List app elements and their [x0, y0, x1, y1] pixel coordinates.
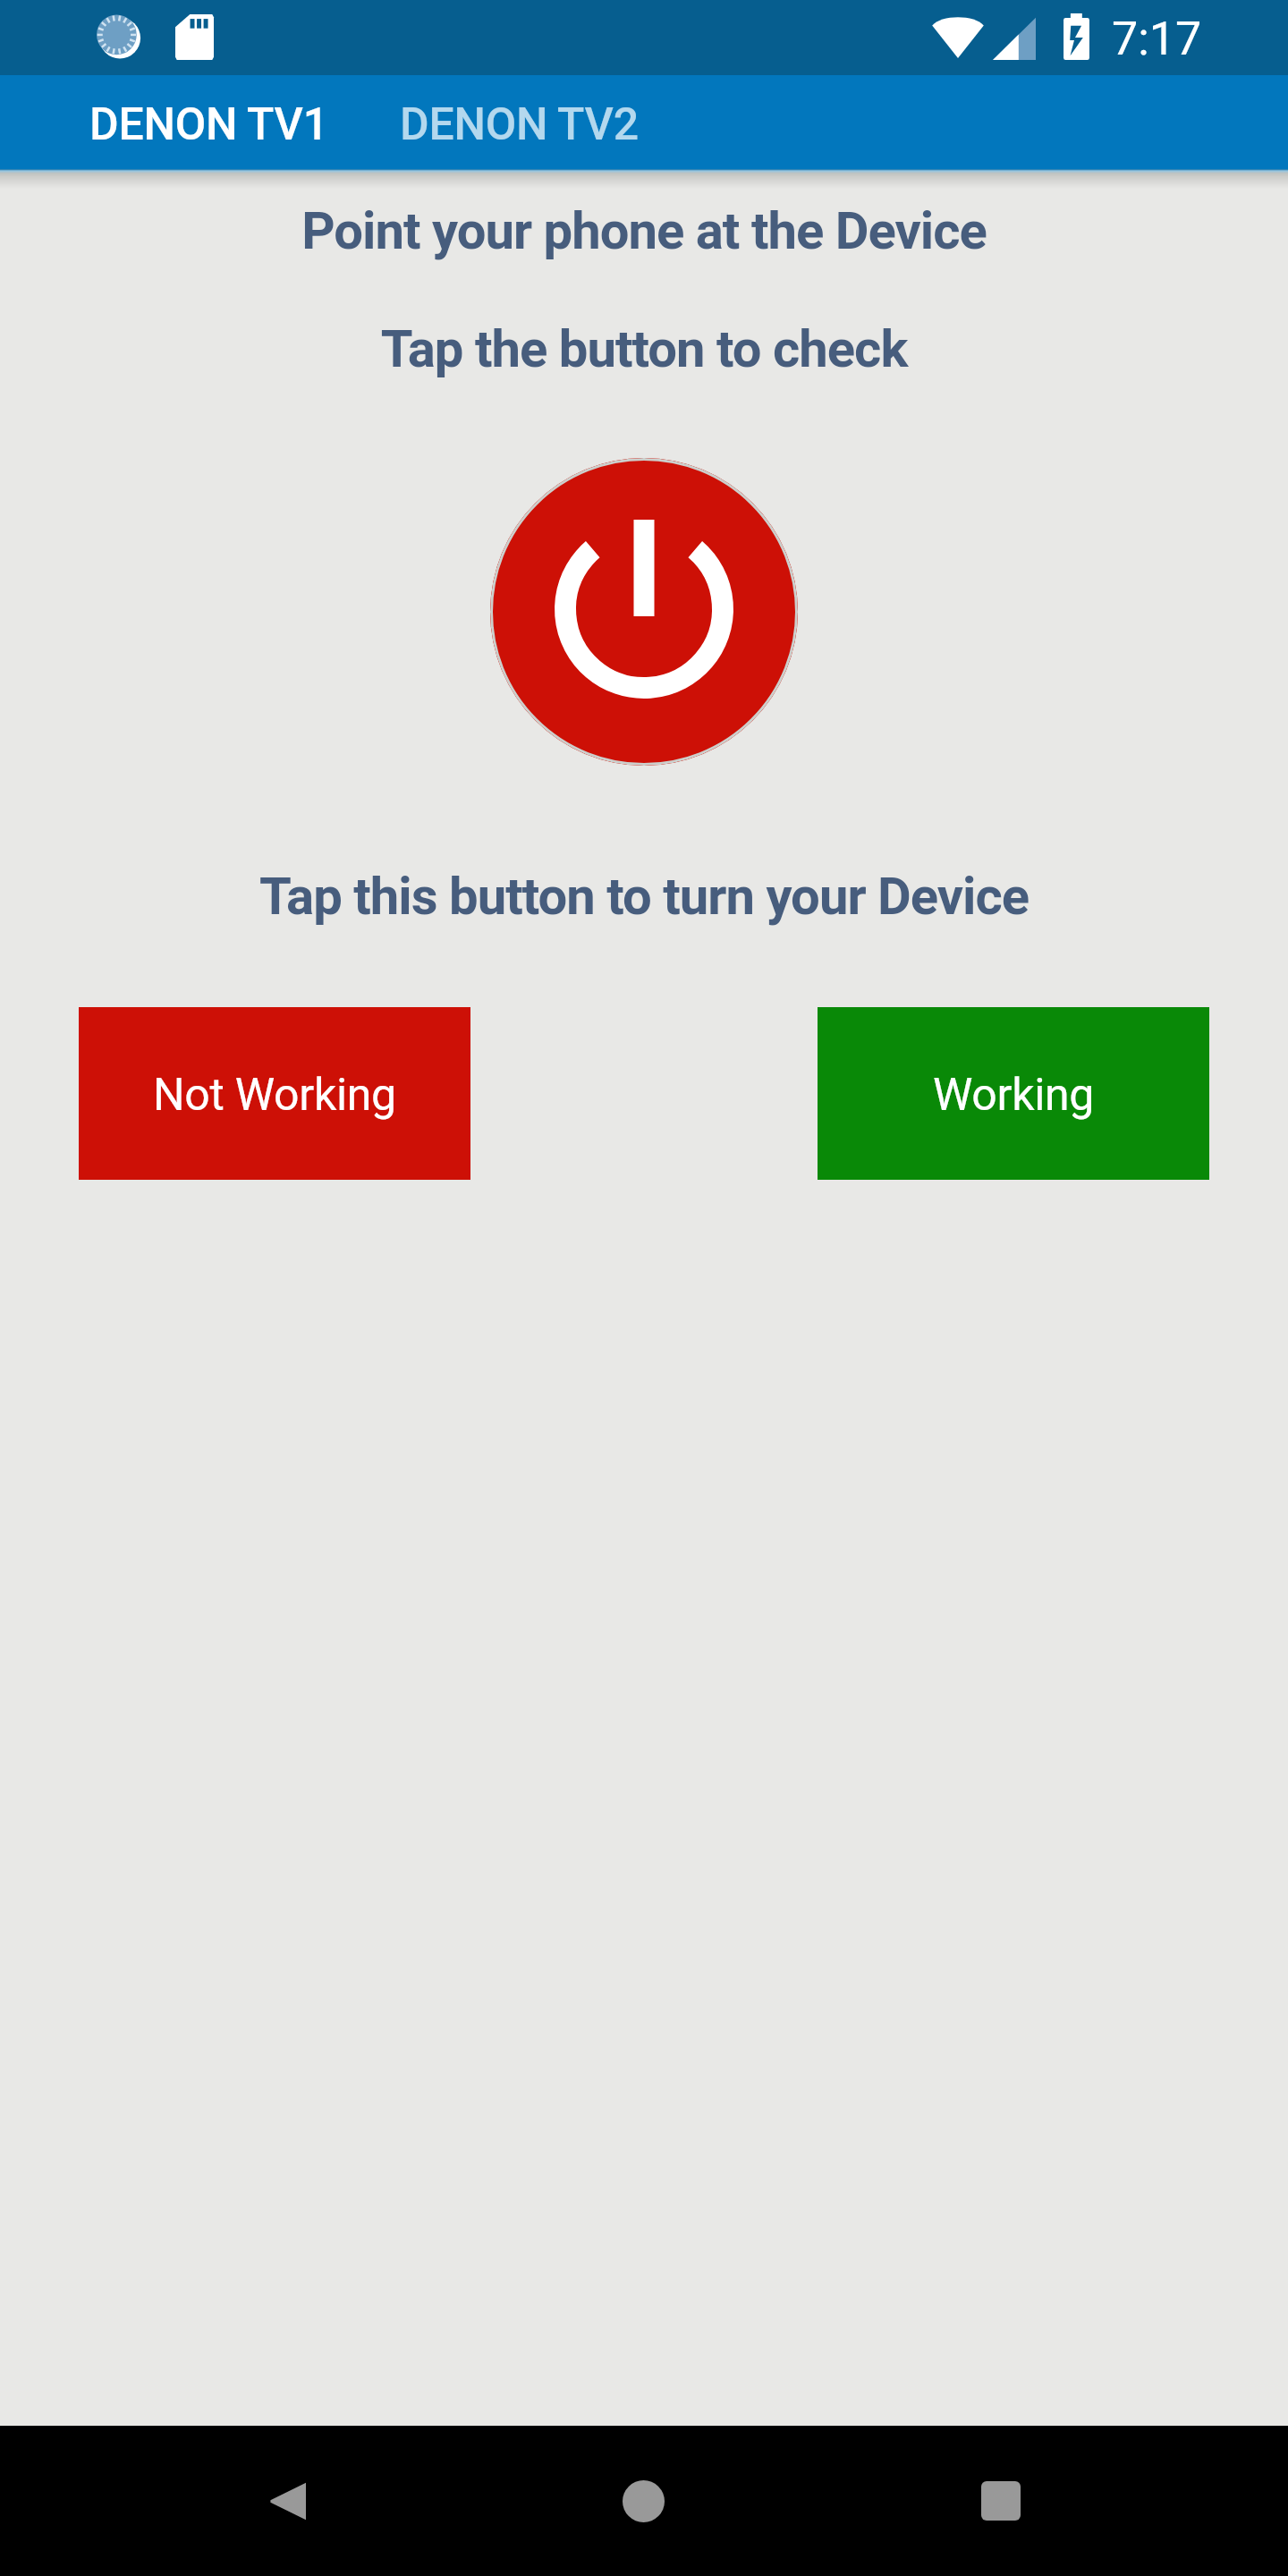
- staticText: 7:17: [1112, 12, 1202, 66]
- staticText: DENON TV2: [400, 98, 639, 149]
- staticText: Tap this button to turn your Device: [0, 866, 1288, 927]
- staticText: DENON TV1: [89, 98, 328, 149]
- button[interactable]: Back: [232, 2447, 339, 2555]
- button[interactable]: DENON TV1: [54, 77, 364, 171]
- button[interactable]: DENON TV2: [364, 77, 674, 171]
- button[interactable]: Working: [818, 1007, 1209, 1180]
- staticText: Not Working: [153, 1069, 396, 1122]
- staticText: Working: [933, 1069, 1095, 1122]
- staticText: Tap the button to check: [0, 318, 1288, 379]
- button[interactable]: Not Working: [79, 1007, 470, 1180]
- staticText: Point your phone at the Device: [0, 200, 1288, 261]
- button[interactable]: Home: [589, 2447, 697, 2555]
- button[interactable]: Recents: [947, 2447, 1055, 2555]
- button[interactable]: Power: [490, 458, 798, 766]
